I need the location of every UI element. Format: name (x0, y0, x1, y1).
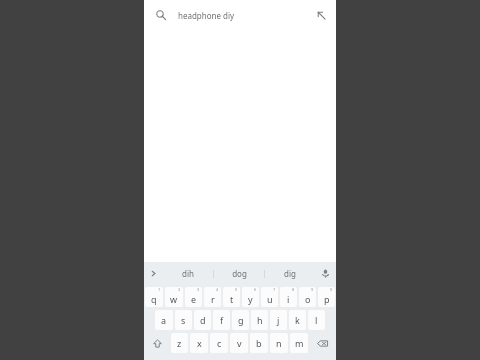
staticText: dig (284, 268, 296, 279)
staticText: headphone diy (178, 10, 235, 21)
button[interactable]: f (213, 310, 230, 330)
staticText: f (220, 314, 224, 326)
staticText: u (267, 293, 273, 305)
staticText: l (315, 314, 318, 326)
button[interactable]: z (171, 333, 188, 353)
staticText: j (277, 314, 280, 326)
staticText: 5 (235, 287, 238, 292)
button[interactable]: More suggestions (144, 262, 163, 285)
staticText: h (257, 314, 263, 326)
staticText: z (177, 337, 182, 349)
button[interactable]: s (175, 310, 192, 330)
button[interactable]: n (270, 333, 288, 353)
button[interactable]: x (190, 333, 208, 353)
staticText: 0 (330, 287, 333, 292)
staticText: s (181, 314, 186, 326)
button[interactable]: k (289, 310, 306, 330)
staticText: y (248, 293, 253, 305)
button[interactable]: a (155, 310, 173, 330)
button[interactable]: Voice input (315, 262, 336, 285)
staticText: dih (182, 268, 194, 279)
staticText: v (237, 337, 242, 349)
button[interactable]: j (270, 310, 287, 330)
button[interactable]: dih (163, 262, 213, 285)
staticText: q (151, 293, 157, 305)
button[interactable]: 9 (299, 287, 316, 307)
button[interactable]: b (250, 333, 268, 353)
button[interactable]: Search (144, 0, 336, 30)
staticText: r (211, 293, 215, 305)
staticText: 8 (292, 287, 295, 292)
staticText: 4 (216, 287, 219, 292)
staticText: o (305, 293, 311, 305)
button[interactable]: d (194, 310, 211, 330)
staticText: 1 (158, 287, 161, 292)
button[interactable]: dig (265, 262, 315, 285)
button[interactable]: h (251, 310, 268, 330)
staticText: dog (232, 268, 247, 279)
staticText: g (238, 314, 244, 326)
button[interactable]: 1 (145, 287, 163, 307)
button[interactable]: 5 (223, 287, 240, 307)
staticText: n (276, 337, 282, 349)
staticText: w (170, 293, 178, 305)
staticText: d (200, 314, 206, 326)
button[interactable]: 7 (261, 287, 278, 307)
staticText: t (230, 293, 234, 305)
button[interactable]: 6 (242, 287, 259, 307)
staticText: 2 (178, 287, 181, 292)
button[interactable]: m (290, 333, 308, 353)
button[interactable]: Shift (145, 333, 169, 353)
staticText: c (217, 337, 222, 349)
button[interactable]: c (210, 333, 228, 353)
button[interactable]: Backspace (310, 333, 335, 353)
staticText: i (287, 293, 290, 305)
button[interactable]: 2 (165, 287, 183, 307)
button[interactable]: dog (214, 262, 264, 285)
staticText: x (197, 337, 202, 349)
button[interactable]: 0 (318, 287, 335, 307)
staticText: 3 (197, 287, 200, 292)
staticText: e (191, 293, 197, 305)
staticText: b (256, 337, 262, 349)
button[interactable]: g (232, 310, 249, 330)
button[interactable]: 8 (280, 287, 297, 307)
staticText: 9 (311, 287, 314, 292)
button[interactable]: l (308, 310, 325, 330)
staticText: p (324, 293, 330, 305)
staticText: k (295, 314, 300, 326)
staticText: a (161, 314, 167, 326)
button[interactable]: Search (153, 7, 169, 23)
staticText: m (295, 337, 304, 349)
button[interactable]: 4 (204, 287, 221, 307)
button[interactable]: 3 (185, 287, 202, 307)
button[interactable]: v (230, 333, 248, 353)
staticText: 6 (254, 287, 257, 292)
staticText: 7 (273, 287, 276, 292)
button[interactable]: Insert suggestion (312, 6, 330, 24)
